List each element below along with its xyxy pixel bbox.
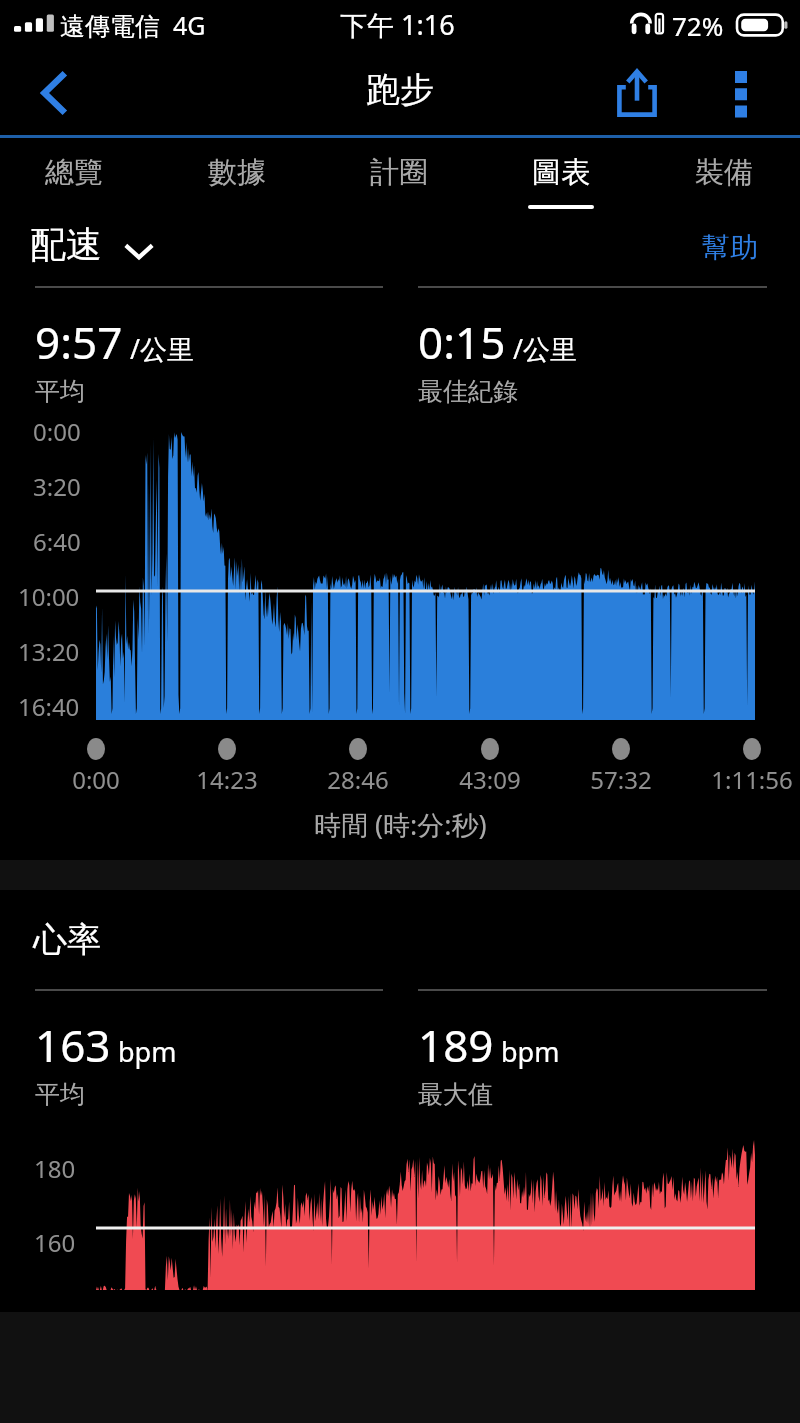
staticText: 3:20 [33, 470, 81, 503]
button[interactable]: Share [600, 58, 674, 128]
staticText: 幫助 [702, 230, 758, 265]
staticText: 裝備 [695, 154, 753, 191]
staticText: 72% [672, 8, 724, 43]
staticText: bpm [501, 1033, 560, 1070]
button[interactable]: More options [706, 58, 776, 128]
staticText: /公里 [513, 330, 578, 367]
staticText: 配速 [30, 222, 102, 267]
staticText: 數據 [208, 154, 266, 191]
staticText: 跑步 [366, 68, 434, 111]
staticText: 總覽 [45, 154, 103, 191]
staticText: 13:20 [18, 635, 80, 668]
staticText: 9:57 [35, 312, 123, 372]
staticText: 下午 1:16 [340, 6, 455, 43]
staticText: 163 [35, 1015, 111, 1075]
staticText: 43:09 [459, 763, 521, 796]
staticText: 6:40 [33, 525, 81, 558]
button[interactable]: 幫助 [690, 218, 780, 276]
button[interactable]: 總覽 [2, 138, 146, 218]
staticText: 圖表 [532, 154, 590, 191]
staticText: 最佳紀錄 [418, 376, 518, 407]
staticText: 計圈 [370, 154, 428, 191]
staticText: 平均 [35, 376, 85, 407]
staticText: 0:00 [72, 763, 120, 796]
staticText: 180 [34, 1152, 76, 1185]
staticText: 遠傳電信 4G [60, 8, 206, 42]
button[interactable]: 計圈 [327, 138, 471, 218]
button[interactable]: 數據 [165, 138, 309, 218]
staticText: 心率 [33, 918, 101, 961]
staticText: 平均 [35, 1079, 85, 1110]
staticText: 1:11:56 [711, 763, 793, 796]
staticText: 時間 (時:分:秒) [314, 806, 487, 843]
staticText: 57:32 [590, 763, 652, 796]
staticText: 16:40 [18, 690, 80, 723]
staticText: 0:00 [33, 415, 81, 448]
staticText: 28:46 [327, 763, 389, 796]
staticText: 0:15 [418, 312, 506, 372]
button[interactable]: 配速 [30, 222, 154, 267]
button[interactable]: 裝備 [652, 138, 796, 218]
staticText: 160 [34, 1226, 76, 1259]
staticText: 14:23 [196, 763, 258, 796]
button[interactable]: 圖表 [489, 138, 633, 218]
staticText: 10:00 [18, 580, 80, 613]
staticText: 最大值 [418, 1079, 493, 1110]
staticText: /公里 [130, 330, 195, 367]
button[interactable]: Back [18, 60, 94, 126]
staticText: bpm [118, 1033, 177, 1070]
staticText: 189 [418, 1015, 494, 1075]
